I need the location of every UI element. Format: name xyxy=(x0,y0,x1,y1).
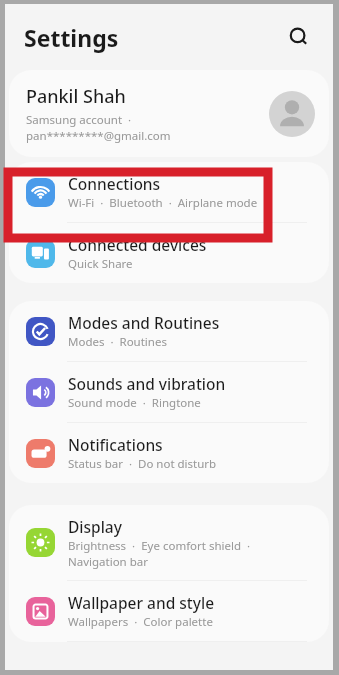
staticText: Notifications xyxy=(68,434,163,455)
staticText: Settings xyxy=(24,22,119,53)
button[interactable]: Wallpaper and style xyxy=(9,581,329,641)
staticText: Wallpapers · Color palette xyxy=(68,614,213,630)
staticText: Modes · Routines xyxy=(68,334,167,350)
button[interactable]: Modes and Routines xyxy=(9,301,329,361)
staticText: Connected devices xyxy=(68,234,207,255)
staticText: Status bar · Do not disturb xyxy=(68,456,217,472)
button[interactable]: Search xyxy=(281,19,317,55)
button[interactable]: Notifications xyxy=(9,423,329,483)
staticText: Wi-Fi · Bluetooth · Airplane mode xyxy=(68,195,258,211)
staticText: Quick Share xyxy=(68,256,133,272)
staticText: Connections xyxy=(68,173,161,194)
staticText: Brightness · Eye comfort shield · Naviga… xyxy=(68,538,309,569)
button[interactable]: Connections xyxy=(9,162,329,222)
button[interactable]: Connected devices xyxy=(9,223,329,283)
staticText: Sound mode · Ringtone xyxy=(68,395,201,411)
button[interactable]: Pankil Shah xyxy=(9,70,329,157)
staticText: Modes and Routines xyxy=(68,312,220,333)
staticText: Wallpaper and style xyxy=(68,592,215,613)
staticText: Pankil Shah xyxy=(26,84,126,109)
staticText: Display xyxy=(68,516,122,537)
button[interactable]: Sounds and vibration xyxy=(9,362,329,422)
button[interactable]: Display xyxy=(9,505,329,580)
staticText: Samsung account · pan*********@gmail.com xyxy=(26,112,261,143)
staticText: Sounds and vibration xyxy=(68,373,226,394)
